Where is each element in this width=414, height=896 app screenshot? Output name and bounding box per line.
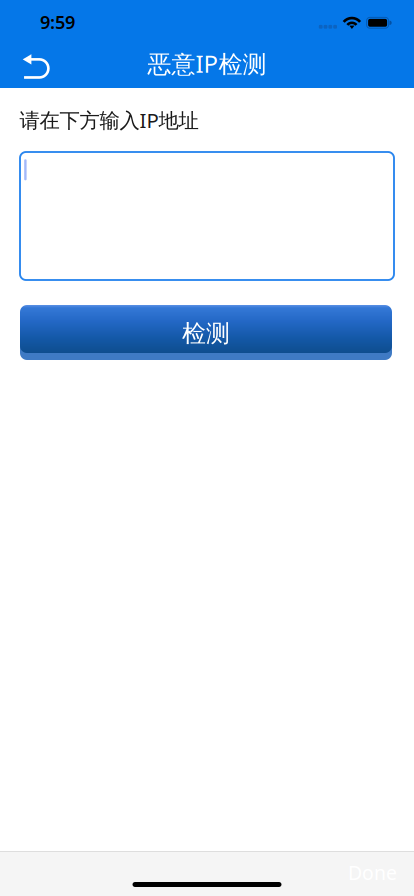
staticText: 恶意IP检测: [147, 47, 266, 80]
button[interactable]: 检测: [20, 305, 392, 360]
staticText: Done: [348, 859, 397, 886]
textField[interactable]: IP: [20, 152, 394, 280]
staticText: 请在下方输入IP地址: [19, 106, 198, 134]
staticText: 9:59: [40, 10, 75, 34]
staticText: 检测: [182, 318, 230, 348]
button[interactable]: Back: [8, 44, 64, 88]
